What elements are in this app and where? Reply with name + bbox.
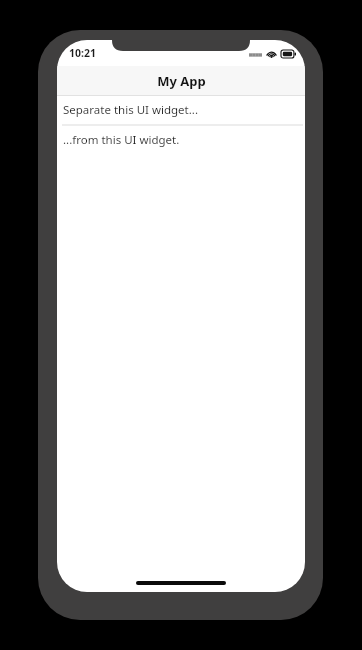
staticText: 10:21 — [69, 46, 96, 60]
staticText: Separate this UI widget... — [63, 102, 198, 118]
other: Battery — [281, 50, 296, 58]
other: Wi-Fi — [266, 49, 277, 58]
staticText: ...from this UI widget. — [63, 132, 180, 148]
staticText: My App — [157, 72, 206, 90]
button[interactable]: Separate this UI widget... — [57, 96, 305, 124]
button[interactable]: ...from this UI widget. — [57, 126, 305, 154]
